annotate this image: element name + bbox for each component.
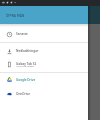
button[interactable]: Nedladdningar (0, 43, 88, 59)
button[interactable]: Senaste (0, 26, 88, 42)
button[interactable]: OneDrive (0, 86, 88, 101)
staticText: OneDrive (16, 92, 30, 96)
button[interactable]: Galaxy Tab S2 (0, 57, 88, 72)
staticText: Google Drive (16, 78, 36, 82)
staticText: Nedladdningar (16, 49, 39, 53)
staticText: 10,00 GB ledigt (16, 64, 34, 67)
button[interactable]: Google Drive (0, 72, 88, 87)
staticText: Senaste (16, 32, 28, 36)
staticText: ÖPPNA FRÅN (6, 14, 25, 18)
staticText: Galaxy Tab S2 (16, 62, 37, 66)
